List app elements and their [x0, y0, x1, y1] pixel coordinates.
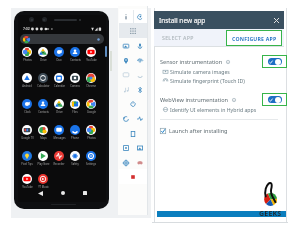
staticText: Drive [40, 58, 47, 62]
button[interactable]: YouTube [83, 47, 99, 62]
button[interactable]: pic [134, 142, 146, 154]
button[interactable]: call [134, 69, 146, 81]
button[interactable]: Clock [19, 99, 35, 114]
staticText: Calculator [37, 84, 50, 88]
staticText: Chrome [86, 84, 96, 88]
button[interactable]: Safety [67, 151, 83, 166]
button[interactable]: YT Music [35, 174, 51, 189]
button[interactable]: bug [134, 157, 146, 169]
staticText: Simulate camera images [170, 68, 230, 75]
button[interactable]: image [120, 40, 132, 52]
staticText: Camera [70, 84, 80, 88]
button[interactable]: Calendar [51, 73, 67, 88]
staticText: Phone [71, 136, 79, 140]
staticText: YT Music [38, 185, 49, 189]
button[interactable]: Close [272, 16, 281, 25]
button[interactable]: Drive [51, 99, 67, 114]
button[interactable]: Settings [83, 151, 99, 166]
button[interactable]: SELECT APP [162, 29, 217, 46]
staticText: YouTube [22, 185, 33, 189]
button[interactable]: Duo [51, 47, 67, 62]
staticText: Clock [24, 110, 31, 114]
button[interactable]: Recent apps [81, 189, 89, 197]
button[interactable]: Toggle Sensor instrumentation [268, 58, 282, 65]
button[interactable]: info [120, 11, 132, 23]
button[interactable]: Back [36, 189, 44, 197]
button[interactable]: grid [127, 25, 139, 37]
button[interactable]: power [127, 98, 139, 110]
button[interactable]: music [120, 84, 132, 96]
staticText: Contacts [70, 58, 81, 62]
staticText: Recorder [53, 162, 65, 166]
staticText: Install new app [159, 16, 206, 25]
button[interactable]: Contacts [35, 99, 51, 114]
button[interactable]: undo [120, 113, 132, 125]
staticText: YouTube [86, 58, 97, 62]
button[interactable]: snap [120, 142, 132, 154]
button[interactable]: Drive [35, 47, 51, 62]
button[interactable]: Chrome [83, 73, 99, 88]
staticText: Identify UI elements in Hybrid apps [170, 106, 257, 113]
button[interactable]: YouTube [19, 174, 35, 189]
button[interactable]: Phone [67, 125, 83, 140]
staticText: SELECT APP [162, 34, 194, 41]
staticText: 7:02 [23, 26, 30, 31]
button[interactable]: Contacts [67, 47, 83, 62]
staticText: Drive [56, 110, 63, 114]
staticText: Pixel Tips [21, 162, 33, 166]
button[interactable]: Photos [83, 125, 99, 140]
button[interactable]: Play Store [35, 151, 51, 166]
button[interactable]: Google [83, 99, 99, 114]
button[interactable]: Recorder [51, 151, 67, 166]
staticText: Duo [56, 58, 62, 62]
button[interactable]: CONFIGURE APP [227, 31, 281, 45]
staticText: GEEKS [259, 209, 282, 219]
button[interactable]: wave [134, 113, 146, 125]
button[interactable]: Camera [67, 73, 83, 88]
staticText: Calendar [54, 84, 65, 88]
staticText: Android [22, 84, 32, 88]
button[interactable]: wifi [134, 55, 146, 67]
staticText: Google TV [21, 136, 34, 140]
button[interactable]: doc [127, 128, 139, 140]
staticText: WebView instrumentation [160, 96, 229, 104]
staticText: Sensor instrumentation [160, 58, 223, 66]
staticText: Photos [87, 136, 96, 140]
button[interactable]: Pixel Tips [19, 151, 35, 166]
button[interactable]: Google TV [19, 125, 35, 140]
button[interactable]: rotate [134, 11, 146, 23]
staticText: Simulate fingerprint (Touch ID) [170, 77, 245, 84]
staticText: CONFIGURE APP [232, 35, 277, 42]
staticText: Safety [71, 162, 79, 166]
button[interactable]: Android [19, 73, 35, 88]
button[interactable]: Messages [51, 125, 67, 140]
button[interactable]: Maps [35, 125, 51, 140]
button[interactable]: record [127, 171, 139, 183]
button[interactable]: target [120, 157, 132, 169]
staticText: Launch after installing [169, 127, 228, 135]
button[interactable]: Launch after installing [160, 126, 260, 135]
button[interactable]: Home [59, 189, 67, 197]
button[interactable]: Calculator [35, 73, 51, 88]
button[interactable]: Toggle WebView instrumentation [268, 96, 282, 103]
button[interactable]: mic [134, 40, 146, 52]
button[interactable]: bt [134, 84, 146, 96]
staticText: Photos [23, 58, 32, 62]
staticText: Contacts [38, 110, 49, 114]
button[interactable]: loc [120, 55, 132, 67]
staticText: Settings [86, 162, 96, 166]
staticText: Google [87, 110, 96, 114]
button[interactable]: Search [20, 34, 104, 44]
button[interactable]: Files [67, 99, 83, 114]
button[interactable]: chat [120, 69, 132, 81]
staticText: Maps [40, 136, 47, 140]
staticText: Play Store [37, 162, 50, 166]
staticText: Files [72, 110, 78, 114]
button[interactable]: Photos [19, 47, 35, 62]
staticText: Messages [53, 136, 66, 140]
